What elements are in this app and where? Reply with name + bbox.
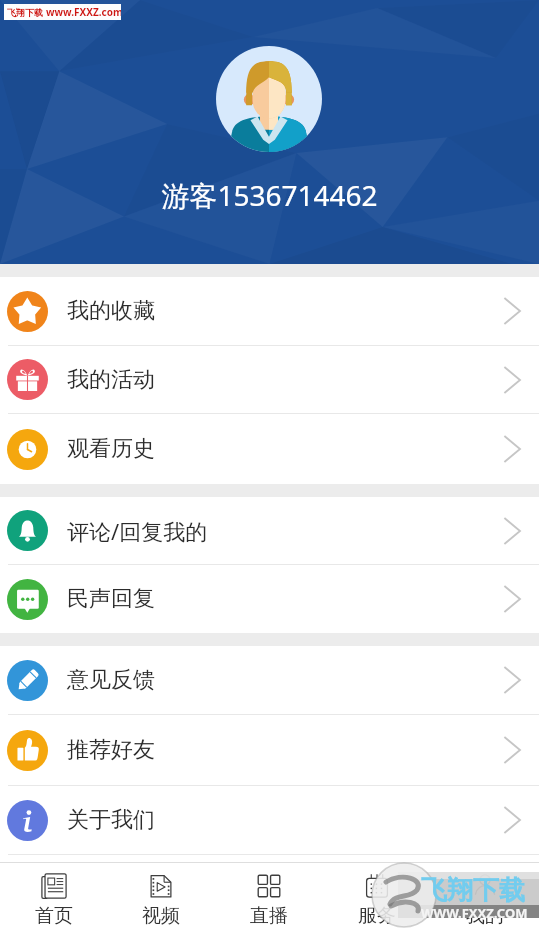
staticText: 飞翔下载 [7,7,43,18]
button[interactable]: 关于我们 [0,786,539,854]
button[interactable]: 视频 [107,867,215,928]
staticText: 飞翔下载 [421,874,525,907]
button[interactable]: 直播 [215,867,323,928]
staticText: 评论/回复我的 [67,516,208,546]
staticText: 民声回复 [67,585,155,613]
button[interactable]: 我的收藏 [0,277,539,345]
staticText: www.FXXZ.com [46,5,121,19]
staticText: 游客1536714462 [0,176,539,214]
button[interactable]: 民声回复 [0,565,539,633]
button[interactable]: 观看历史 [0,414,539,484]
staticText: 服务 [358,904,396,928]
staticText: 意见反馈 [67,666,155,694]
button[interactable]: 推荐好友 [0,715,539,785]
button[interactable]: 意见反馈 [0,646,539,714]
staticText: 我的活动 [67,366,155,394]
staticText: 推荐好友 [67,736,155,764]
staticText: 直播 [250,904,288,928]
button[interactable]: 服务 [323,867,431,928]
staticText: WWW.FXXZ.COM [421,904,528,922]
staticText: 关于我们 [67,806,155,834]
staticText: 我的收藏 [67,297,155,325]
button[interactable]: 我的活动 [0,346,539,413]
staticText: 观看历史 [67,435,155,463]
button[interactable]: 我的 [431,867,539,928]
staticText: 我的 [466,904,504,928]
button[interactable]: 评论/回复我的 [0,497,539,564]
button[interactable]: 首页 [0,867,107,928]
staticText: 首页 [35,904,73,928]
staticText: 视频 [142,904,180,928]
